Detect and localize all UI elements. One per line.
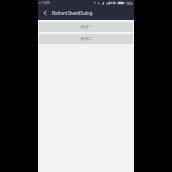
staticText: 70% (126, 1, 133, 6)
button[interactable]: 样式二 (39, 34, 133, 44)
staticText: 10:35 (42, 1, 50, 5)
staticText: BottomSheetDialog (52, 10, 93, 16)
staticText: 样式一 (81, 25, 92, 30)
button[interactable]: Back (40, 8, 50, 18)
button[interactable]: 样式一 (39, 22, 133, 32)
staticText: 样式二 (81, 37, 92, 42)
